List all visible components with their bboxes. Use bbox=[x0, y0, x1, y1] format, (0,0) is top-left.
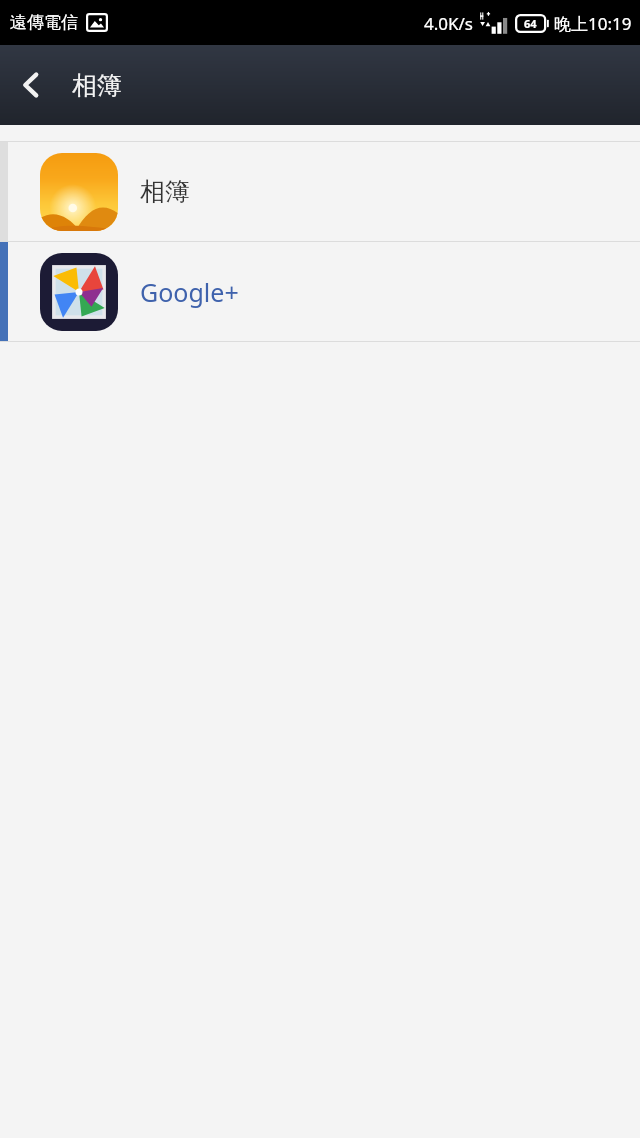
button[interactable]: 相簿 bbox=[0, 142, 640, 241]
staticText: 4.0K/s bbox=[424, 12, 473, 35]
staticText: 64 bbox=[524, 16, 537, 31]
button[interactable]: Google+ bbox=[0, 242, 640, 341]
staticText: 晚上10:19 bbox=[554, 12, 632, 35]
staticText: 遠傳電信 bbox=[10, 12, 78, 33]
staticText: 相簿 bbox=[140, 176, 190, 207]
staticText: 相簿 bbox=[72, 70, 122, 101]
button[interactable]: Back bbox=[0, 54, 62, 116]
staticText: Google+ bbox=[140, 275, 239, 309]
